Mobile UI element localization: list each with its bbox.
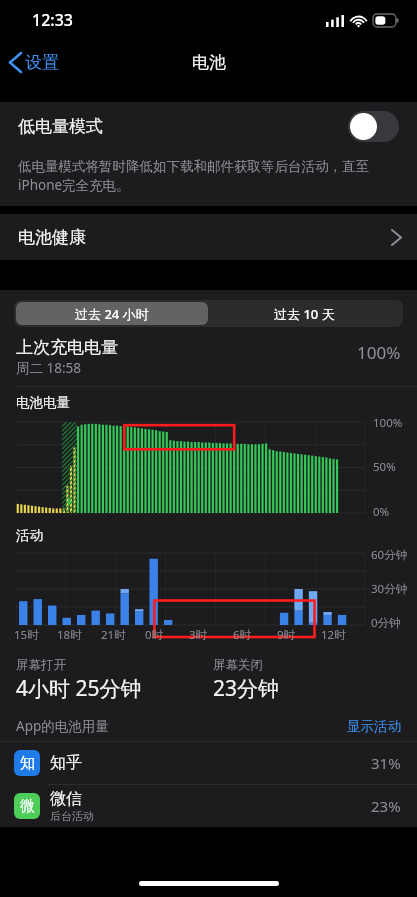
staticText: 微 [20, 797, 35, 816]
staticText: 0% [373, 504, 390, 520]
staticText: 4小时 25分钟 [16, 674, 142, 703]
button[interactable]: 显示活动 [347, 718, 401, 735]
staticText: 100% [373, 415, 403, 431]
staticText: 显示活动 [347, 718, 401, 735]
button[interactable]: 低电量模式 [0, 102, 417, 150]
staticText: 18时 [57, 627, 82, 643]
staticText: 12:33 [32, 9, 73, 31]
staticText: 过去 24 小时 [75, 305, 149, 323]
staticText: 23% [371, 796, 401, 816]
staticText: 电池电量 [16, 394, 70, 411]
staticText: 微信 [50, 789, 82, 809]
staticText: 0分钟 [371, 615, 401, 631]
button[interactable]: 电池健康 [0, 214, 417, 260]
staticText: 周二 18:58 [16, 359, 82, 377]
staticText: 9时 [277, 627, 296, 643]
staticText: 50% [373, 459, 396, 475]
staticText: 电池 [192, 52, 226, 73]
button[interactable]: 知 [0, 742, 417, 784]
staticText: 屏幕打开 [16, 657, 66, 673]
button[interactable]: 过去 10 天 [208, 302, 401, 325]
staticText: 上次充电电量 [16, 337, 118, 358]
staticText: 过去 10 天 [274, 305, 335, 323]
staticText: 屏幕关闭 [213, 657, 263, 673]
staticText: 电池健康 [18, 227, 86, 248]
button[interactable]: 低电量模式开关 [348, 111, 399, 142]
staticText: 12时 [321, 627, 346, 643]
staticText: 知 [20, 754, 35, 773]
staticText: 低电量模式将暂时降低如下载和邮件获取等后台活动，直至 iPhone完全充电。 [18, 158, 369, 194]
staticText: 30分钟 [371, 581, 408, 597]
staticText: 100% [357, 341, 401, 364]
button[interactable]: 设置 [0, 46, 71, 79]
staticText: 活动 [16, 527, 43, 544]
button[interactable]: 微 [0, 785, 417, 827]
staticText: 低电量模式 [18, 116, 103, 137]
staticText: 15时 [14, 627, 39, 643]
staticText: 知乎 [50, 753, 82, 773]
staticText: 设置 [25, 52, 59, 73]
staticText: 6时 [233, 627, 252, 643]
staticText: 0时 [145, 627, 164, 643]
staticText: 60分钟 [371, 547, 408, 563]
staticText: 31% [371, 753, 401, 773]
staticText: 21时 [101, 627, 126, 643]
staticText: 3时 [189, 627, 208, 643]
staticText: 后台活动 [50, 809, 94, 823]
staticText: App的电池用量 [16, 717, 109, 735]
staticText: 23分钟 [213, 674, 280, 703]
button[interactable]: 过去 24 小时 [16, 302, 208, 325]
